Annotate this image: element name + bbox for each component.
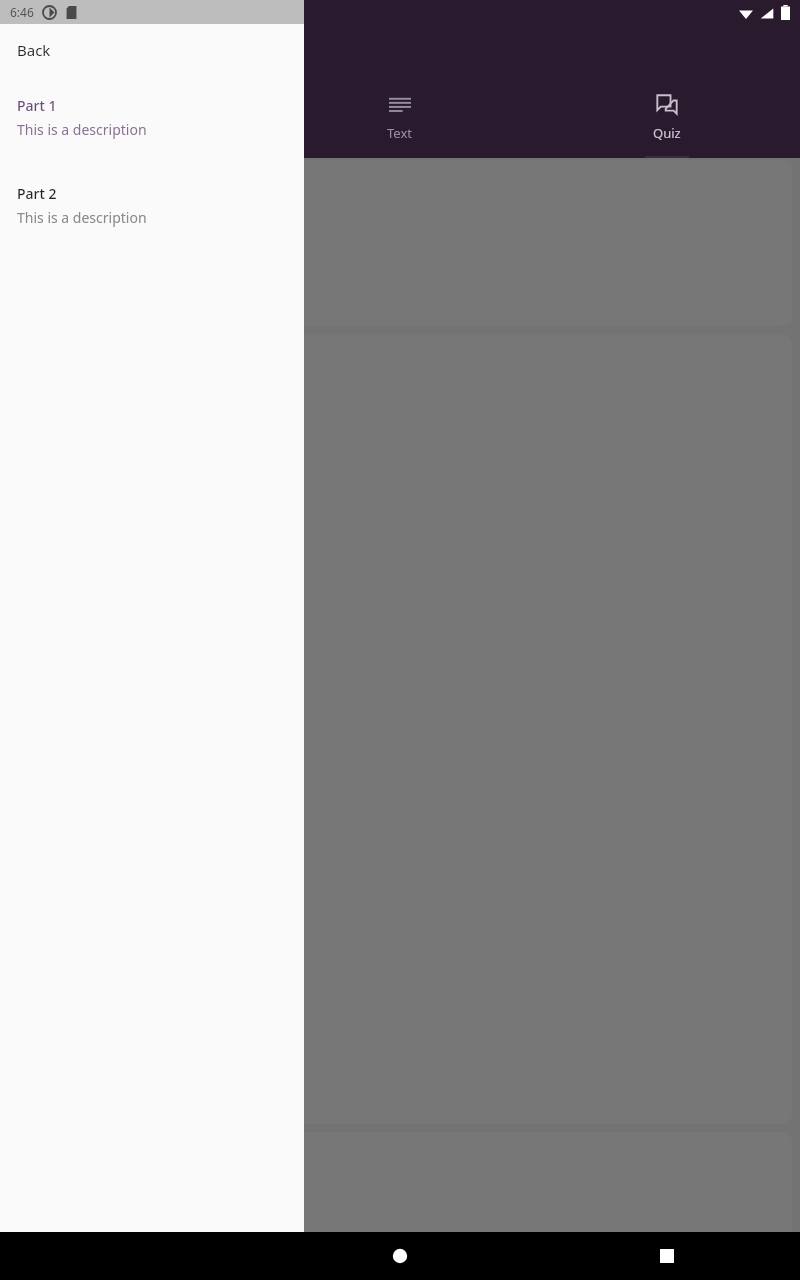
button[interactable]: Part 1 (0, 76, 304, 164)
staticText: 6:46 (10, 4, 34, 20)
button[interactable]: Part 2 (0, 164, 304, 252)
staticText: Part 1 (17, 96, 57, 115)
button[interactable]: Home (266, 1232, 533, 1280)
staticText: Quiz (653, 124, 681, 142)
staticText: Welcome (105, 124, 162, 142)
button[interactable]: Text (266, 86, 533, 158)
staticText: Quiz (72, 225, 130, 262)
staticText: Back (17, 40, 51, 60)
staticText: Text (387, 124, 412, 142)
staticText: This is a description (17, 208, 147, 227)
button[interactable]: Recents (533, 1232, 800, 1280)
button[interactable]: Quiz (533, 86, 800, 158)
button[interactable]: Welcome (0, 86, 266, 158)
staticText: This is a description (17, 120, 147, 139)
staticText: Part 2 (17, 184, 57, 203)
button[interactable]: Back (0, 24, 304, 76)
